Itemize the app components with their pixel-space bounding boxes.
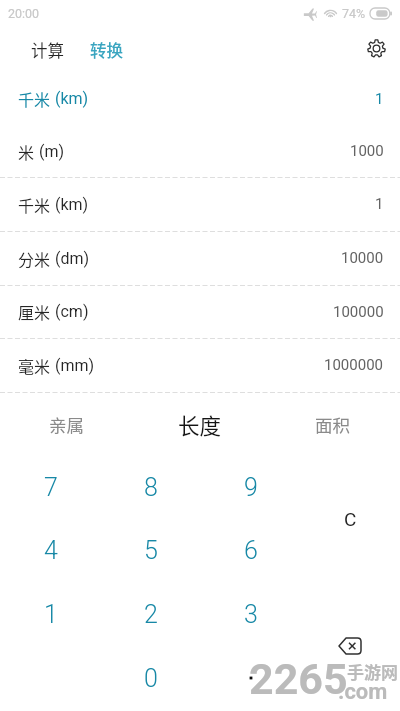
staticText: 长度 [178,409,222,440]
staticText: 20:00 [8,6,40,21]
staticText: 2265 [249,654,348,704]
staticText: 10000 [341,249,384,267]
staticText: 1 [375,90,384,108]
staticText: 74% [342,6,366,21]
staticText: C [344,508,357,530]
button[interactable]: 长度 [170,402,230,446]
staticText: 0 [144,664,158,693]
button[interactable]: C [320,496,380,541]
staticText: 100000 [333,303,384,321]
staticText: 厘米 [18,300,51,323]
button[interactable]: Settings [358,30,394,66]
staticText: 千米 [18,193,51,216]
staticText: .com [338,679,388,705]
button[interactable]: 亲属 [36,402,96,446]
staticText: 7 [44,473,58,502]
button[interactable]: 千米 [0,72,400,125]
staticText: 千米 [18,87,51,110]
staticText: 4 [44,536,58,565]
staticText: 1 [44,600,58,629]
staticText: (km) [55,89,89,108]
staticText: (cm) [55,302,89,321]
button[interactable]: 8 [101,456,201,518]
button[interactable]: 计算 [23,33,72,67]
staticText: 6 [244,536,258,565]
staticText: (mm) [55,356,95,375]
staticText: (m) [39,142,65,161]
button[interactable]: 米 [0,125,400,177]
button[interactable]: 转换 [82,33,131,67]
button[interactable]: 4 [1,519,101,581]
button[interactable]: Decimal point [201,647,301,709]
button[interactable]: 1 [1,583,101,645]
button[interactable]: 5 [101,519,201,581]
button[interactable]: 毫米 [0,338,400,392]
staticText: 面积 [315,412,350,437]
button[interactable]: Backspace [320,623,380,669]
staticText: 手游网 [347,659,398,684]
button[interactable]: 9 [201,456,301,518]
staticText: 1000000 [324,356,384,374]
staticText: 2 [144,600,158,629]
staticText: 分米 [18,247,51,270]
staticText: (km) [55,195,89,214]
button[interactable]: 3 [201,583,301,645]
button[interactable]: 面积 [302,402,362,446]
button[interactable]: 千米 [0,177,400,231]
staticText: 5 [144,536,158,565]
button[interactable]: 7 [1,456,101,518]
staticText: 亲属 [49,412,84,437]
button[interactable]: 厘米 [0,285,400,338]
staticText: 1000 [350,142,384,160]
staticText: 米 [18,140,35,163]
staticText: 9 [244,473,258,502]
button[interactable]: 2 [101,583,201,645]
staticText: (dm) [55,249,90,268]
button[interactable]: 0 [101,647,201,709]
button[interactable]: 6 [201,519,301,581]
staticText: 1 [375,195,384,213]
staticText: 8 [144,473,158,502]
staticText: 3 [244,600,258,629]
staticText: 转换 [90,38,123,62]
staticText: 计算 [31,38,64,62]
staticText: 毫米 [18,354,51,377]
button[interactable]: 分米 [0,231,400,285]
